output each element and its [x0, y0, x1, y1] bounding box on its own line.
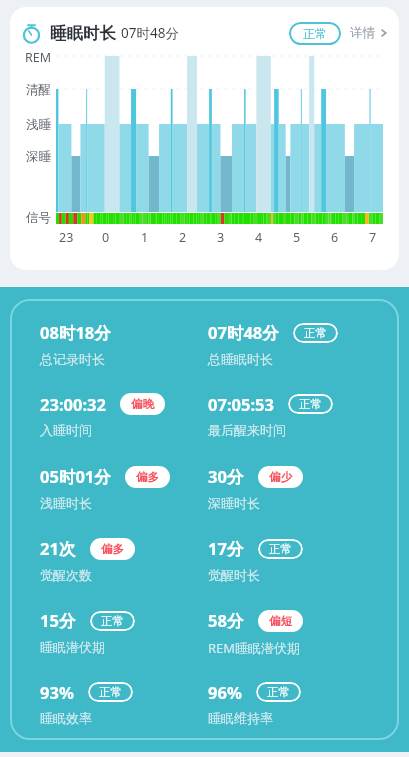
button[interactable]: 30分: [208, 465, 377, 511]
button[interactable]: 08时18分: [40, 321, 208, 367]
staticText: 睡眠潜伏期: [40, 639, 105, 655]
staticText: 清醒: [18, 82, 51, 98]
staticText: 1: [141, 229, 149, 246]
staticText: 93%: [40, 681, 74, 703]
staticText: 30分: [208, 465, 244, 488]
staticText: 23:00:32: [40, 393, 106, 415]
staticText: 6: [331, 229, 339, 246]
other: Sleep duration: [21, 23, 42, 44]
staticText: 07:05:53: [208, 393, 274, 415]
staticText: 96%: [208, 681, 242, 703]
button[interactable]: 23:00:32: [40, 393, 208, 438]
staticText: 总睡眠时长: [208, 351, 273, 367]
staticText: 21次: [40, 537, 76, 560]
staticText: 浅睡: [18, 117, 51, 133]
staticText: 17分: [208, 537, 244, 560]
staticText: 07时48分: [208, 321, 279, 344]
staticText: 正常: [299, 397, 322, 411]
staticText: 觉醒时长: [208, 567, 260, 583]
staticText: 正常: [101, 614, 124, 628]
staticText: 5: [293, 229, 301, 246]
staticText: 偏多: [101, 542, 124, 556]
staticText: 浅睡时长: [40, 495, 92, 511]
staticText: 58分: [208, 609, 244, 632]
button[interactable]: 详情: [350, 20, 389, 46]
staticText: 正常: [303, 26, 327, 41]
staticText: 偏多: [136, 470, 159, 484]
staticText: 07时48分: [121, 24, 179, 42]
staticText: 正常: [269, 542, 292, 556]
button[interactable]: 正常: [289, 22, 341, 45]
staticText: 详情: [350, 25, 375, 41]
staticText: 偏短: [269, 614, 292, 628]
staticText: 信号: [18, 210, 51, 226]
staticText: 15分: [40, 609, 76, 632]
staticText: REM睡眠潜伏期: [208, 639, 301, 657]
staticText: 总记录时长: [40, 351, 105, 367]
staticText: 2: [179, 229, 187, 246]
button[interactable]: 93%: [40, 681, 208, 726]
button[interactable]: 05时01分: [40, 465, 208, 511]
staticText: 觉醒次数: [40, 567, 92, 583]
staticText: 7: [369, 229, 377, 246]
staticText: 正常: [304, 326, 327, 340]
staticText: 正常: [267, 685, 290, 699]
staticText: 0: [102, 229, 110, 246]
button[interactable]: 07:05:53: [208, 393, 377, 438]
staticText: 睡眠效率: [40, 710, 92, 726]
staticText: 正常: [99, 685, 122, 699]
staticText: 入睡时间: [40, 422, 92, 438]
staticText: 05时01分: [40, 465, 111, 488]
staticText: 偏晚: [131, 397, 154, 411]
button[interactable]: 58分: [208, 609, 377, 657]
staticText: 最后醒来时间: [208, 422, 286, 438]
staticText: REM: [18, 49, 51, 66]
staticText: 深睡: [18, 149, 51, 165]
button[interactable]: 17分: [208, 537, 377, 583]
staticText: 睡眠时长: [50, 23, 116, 44]
staticText: 深睡时长: [208, 495, 260, 511]
button[interactable]: 21次: [40, 537, 208, 583]
staticText: 3: [217, 229, 225, 246]
button[interactable]: 96%: [208, 681, 377, 726]
button[interactable]: 15分: [40, 609, 208, 655]
button[interactable]: 07时48分: [208, 321, 377, 367]
staticText: 08时18分: [40, 321, 111, 344]
staticText: 偏少: [269, 470, 292, 484]
staticText: 23: [59, 229, 74, 246]
staticText: 4: [255, 229, 263, 246]
staticText: 睡眠维持率: [208, 710, 273, 726]
